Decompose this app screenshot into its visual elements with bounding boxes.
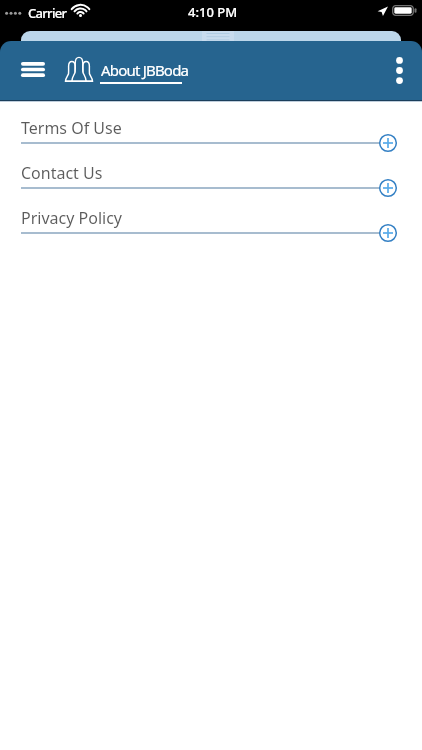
staticText: Contact Us [21,162,103,184]
staticText: Terms Of Use [21,117,122,139]
staticText: Privacy Policy [21,207,122,229]
button[interactable]: Terms Of Use [0,110,422,155]
button[interactable]: Privacy Policy [0,200,422,245]
button[interactable]: More options [380,49,420,93]
staticText: About JBBoda [101,60,189,80]
button[interactable]: Menu [11,51,55,91]
button[interactable]: Contact Us [0,155,422,200]
staticText: 4:10 PM [188,3,238,21]
staticText: Carrier [28,4,67,22]
